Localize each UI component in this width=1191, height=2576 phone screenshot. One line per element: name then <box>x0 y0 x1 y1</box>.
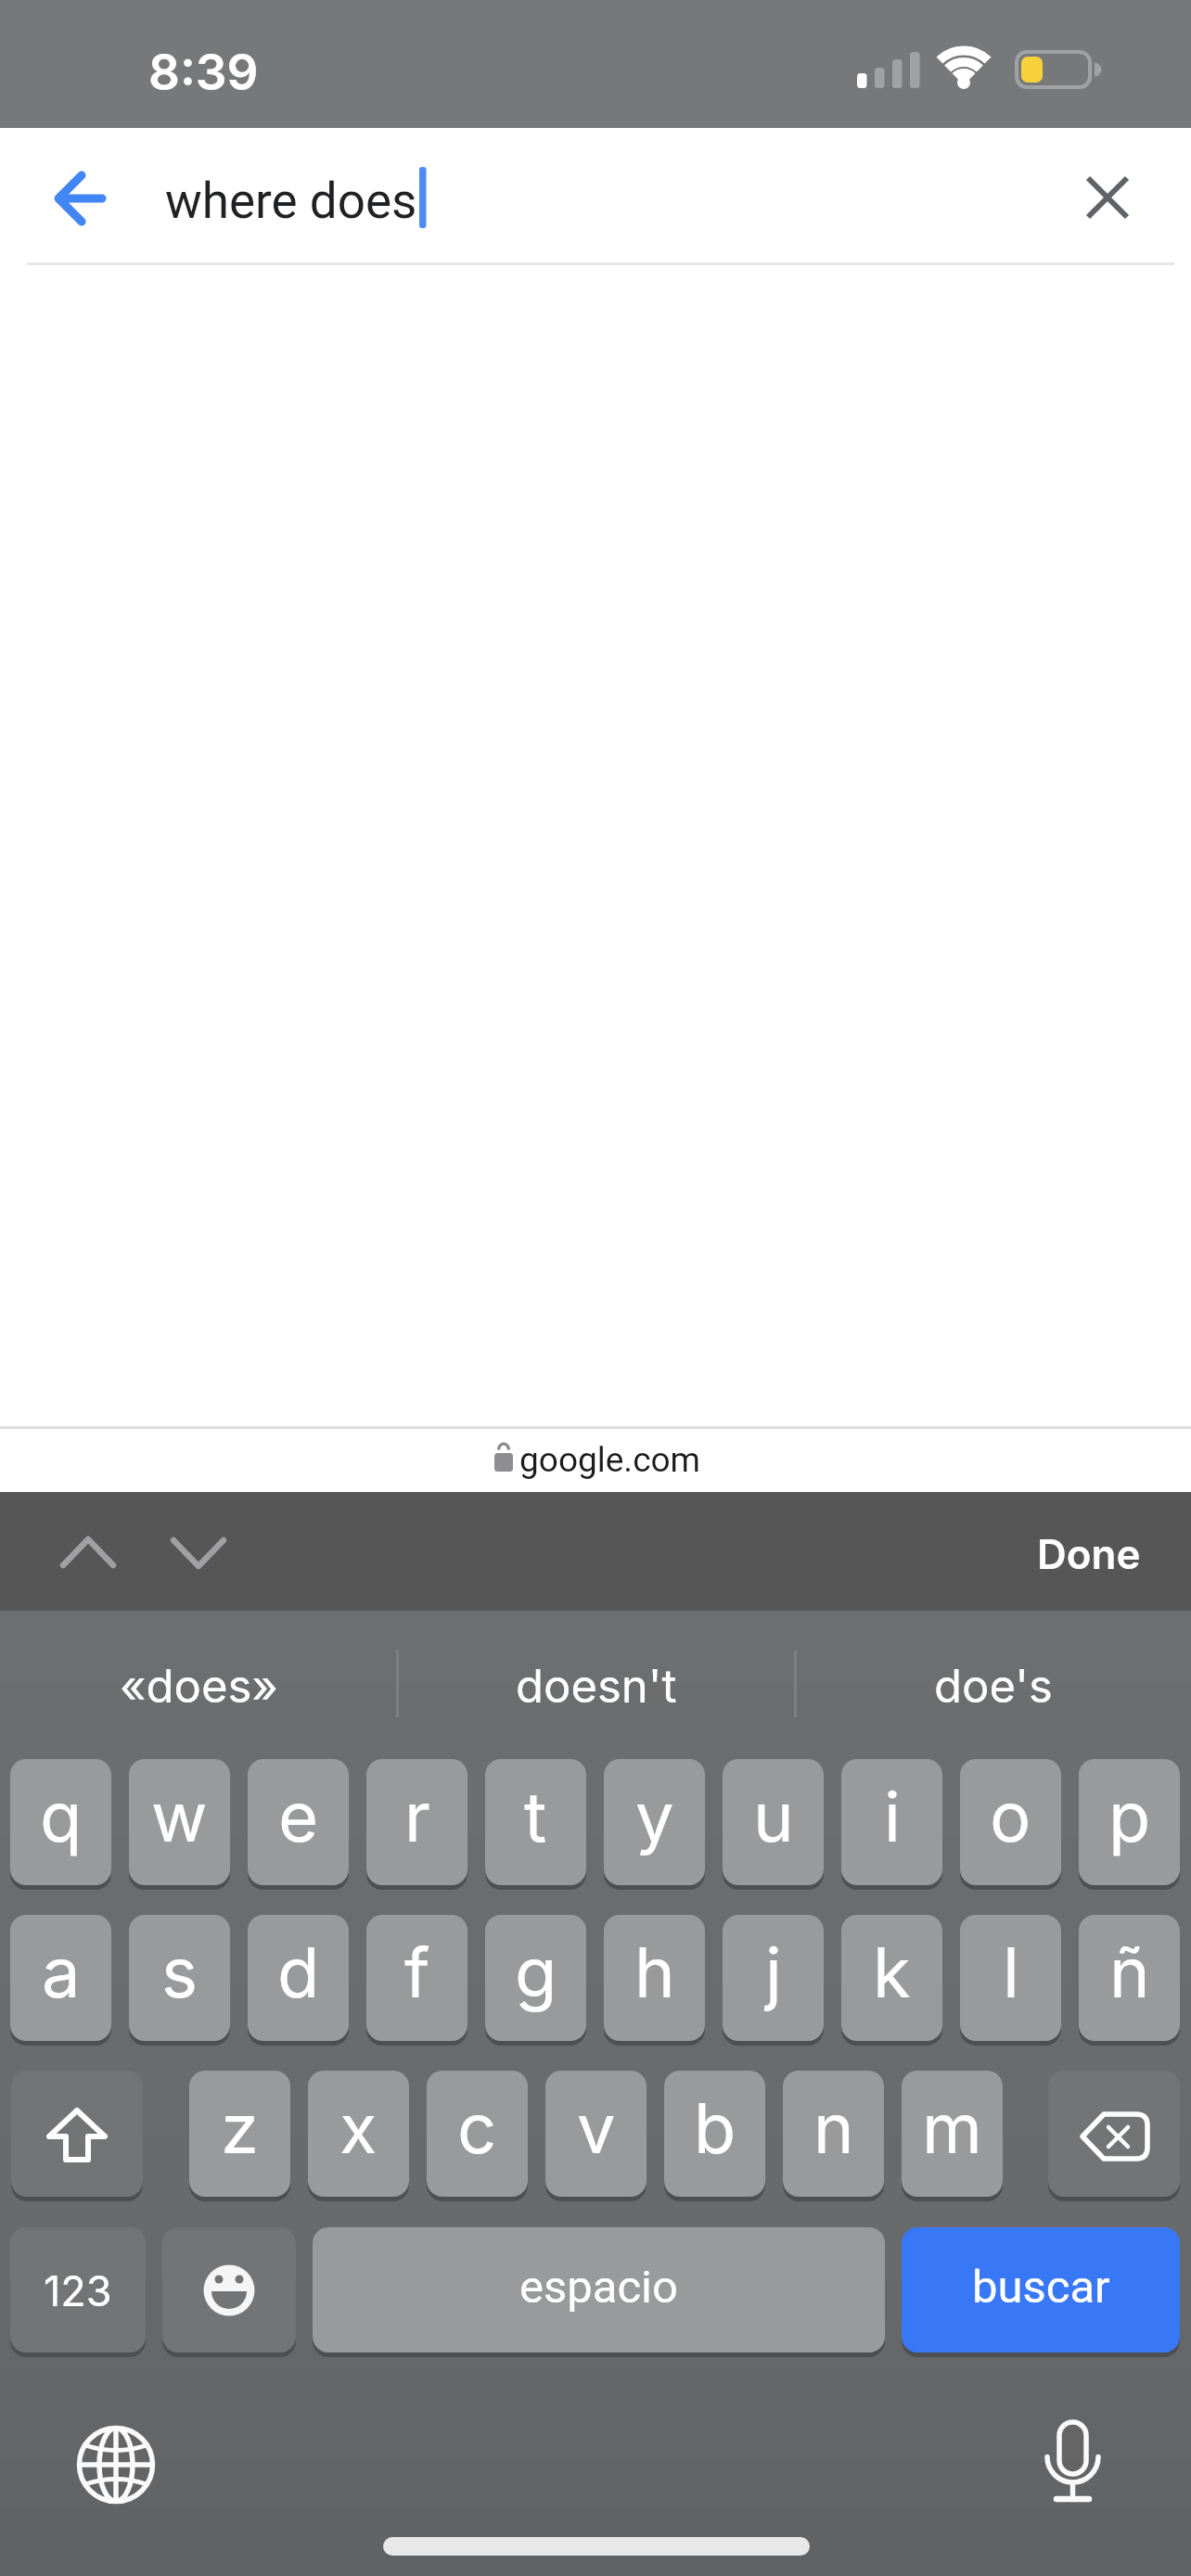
button[interactable]: b <box>664 2071 765 2197</box>
staticText: q <box>40 1775 83 1858</box>
button[interactable]: v <box>545 2071 647 2197</box>
button[interactable] <box>37 148 130 250</box>
staticText: 123 <box>44 2265 112 2315</box>
button[interactable]: d <box>248 1915 349 2041</box>
staticText: doe's <box>934 1659 1053 1714</box>
button[interactable]: espacio <box>313 2227 885 2353</box>
staticText: y <box>635 1775 674 1858</box>
button[interactable]: j <box>723 1915 824 2041</box>
button[interactable]: c <box>427 2071 528 2197</box>
button[interactable]: w <box>129 1759 230 1885</box>
button[interactable]: ñ <box>1079 1915 1180 2041</box>
staticText: t <box>524 1775 547 1858</box>
button[interactable]: z <box>189 2071 290 2197</box>
staticText: i <box>884 1775 901 1858</box>
staticText: e <box>278 1775 319 1858</box>
staticText: z <box>221 2086 259 2170</box>
button[interactable] <box>70 2418 162 2511</box>
button[interactable]: «does» <box>0 1651 397 1721</box>
staticText: v <box>577 2086 616 2170</box>
staticText: j <box>765 1931 782 2014</box>
button[interactable]: 123 <box>10 2227 146 2353</box>
button[interactable]: e <box>248 1759 349 1885</box>
button[interactable]: buscar <box>902 2227 1180 2353</box>
staticText: s <box>161 1931 198 2014</box>
staticText: w <box>151 1775 208 1858</box>
button[interactable]: doesn't <box>399 1651 794 1721</box>
staticText: b <box>694 2086 736 2170</box>
staticText: r <box>404 1775 430 1858</box>
staticText: ñ <box>1109 1931 1150 2014</box>
button[interactable] <box>11 2071 143 2197</box>
button[interactable]: n <box>783 2071 884 2197</box>
button[interactable] <box>51 1516 125 1590</box>
button[interactable] <box>1076 167 1141 232</box>
button[interactable]: i <box>841 1759 942 1885</box>
button[interactable]: k <box>841 1915 942 2041</box>
button[interactable]: y <box>604 1759 705 1885</box>
staticText: u <box>753 1775 794 1858</box>
button[interactable]: q <box>10 1759 111 1885</box>
button[interactable] <box>1048 2071 1180 2197</box>
button[interactable]: a <box>10 1915 111 2041</box>
staticText: n <box>813 2086 854 2170</box>
staticText: m <box>922 2086 982 2170</box>
button[interactable]: m <box>902 2071 1003 2197</box>
button[interactable] <box>161 1516 236 1590</box>
staticText: google.com <box>519 1440 701 1480</box>
staticText: l <box>1003 1931 1019 2014</box>
staticText: f <box>404 1931 430 2014</box>
button[interactable]: f <box>366 1915 467 2041</box>
button[interactable]: u <box>723 1759 824 1885</box>
staticText: k <box>873 1931 911 2014</box>
staticText: p <box>1108 1775 1151 1858</box>
staticText: espacio <box>519 2261 678 2314</box>
button[interactable] <box>1026 2418 1119 2511</box>
button[interactable] <box>162 2227 296 2353</box>
button[interactable]: r <box>366 1759 467 1885</box>
button[interactable]: h <box>604 1915 705 2041</box>
button[interactable]: x <box>308 2071 409 2197</box>
staticText: a <box>42 1931 81 2014</box>
button[interactable]: Done <box>1006 1521 1141 1586</box>
button[interactable]: s <box>129 1915 230 2041</box>
button[interactable]: p <box>1079 1759 1180 1885</box>
staticText: doesn't <box>516 1659 677 1714</box>
button[interactable]: t <box>485 1759 586 1885</box>
staticText: h <box>634 1931 675 2014</box>
staticText: «does» <box>120 1659 278 1714</box>
staticText: o <box>990 1775 1031 1858</box>
staticText: where does <box>165 172 417 230</box>
staticText: d <box>277 1931 320 2014</box>
button[interactable]: o <box>960 1759 1061 1885</box>
staticText: c <box>457 2086 497 2170</box>
staticText: 8:39 <box>148 43 259 100</box>
button[interactable]: g <box>485 1915 586 2041</box>
button[interactable]: doe's <box>796 1651 1191 1721</box>
staticText: Done <box>1037 1529 1141 1578</box>
staticText: x <box>339 2086 378 2170</box>
staticText: g <box>515 1931 557 2014</box>
button[interactable]: l <box>960 1915 1061 2041</box>
staticText: buscar <box>972 2261 1110 2314</box>
